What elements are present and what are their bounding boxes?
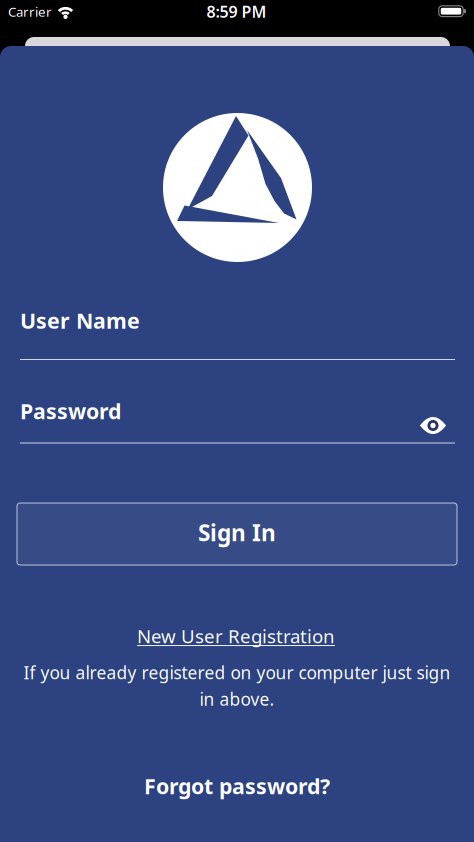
staticText: in above. — [199, 687, 274, 710]
staticText: Forgot password? — [144, 772, 330, 800]
button[interactable]: Password — [20, 375, 454, 445]
staticText: New User Registration — [137, 624, 335, 648]
staticText: Carrier — [8, 3, 52, 20]
button[interactable]: New User Registration — [86, 621, 386, 651]
button[interactable]: Show password — [420, 416, 446, 434]
staticText: Sign In — [198, 517, 276, 547]
button[interactable]: Forgot password? — [87, 769, 387, 803]
staticText: 8:59 PM — [206, 1, 266, 22]
button[interactable]: User Name — [20, 300, 454, 370]
staticText: User Name — [20, 306, 140, 335]
staticText: Password — [20, 397, 121, 425]
button[interactable]: Sign In — [17, 503, 457, 565]
staticText: If you already registered on your comput… — [23, 661, 450, 684]
